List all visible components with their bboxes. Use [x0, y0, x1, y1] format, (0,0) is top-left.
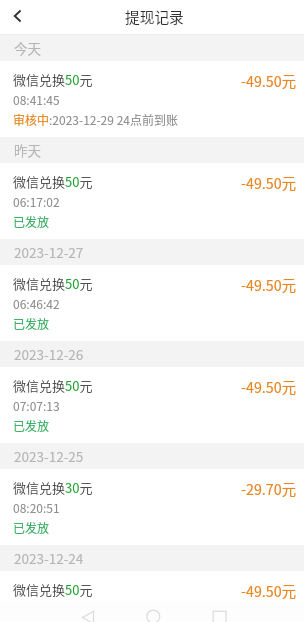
staticText: 微信兑换50元: [13, 274, 93, 293]
button[interactable]: 微信兑换50元: [0, 571, 304, 622]
staticText: -49.50元: [241, 172, 296, 193]
staticText: 已发放: [13, 417, 50, 434]
button[interactable]: 微信兑换50元: [0, 367, 304, 443]
staticText: 已发放: [13, 315, 50, 332]
staticText: 2023-12-27: [14, 242, 84, 262]
staticText: -49.50元: [241, 274, 296, 295]
staticText: 08:41:45: [13, 91, 60, 108]
staticText: -49.50元: [241, 70, 296, 91]
staticText: 2023-12-24: [14, 548, 84, 568]
staticText: 微信兑换50元: [13, 376, 93, 395]
staticText: 已发放: [13, 213, 50, 230]
staticText: 昨天: [14, 140, 41, 160]
button[interactable]: 微信兑换30元: [0, 469, 304, 545]
button[interactable]: 微信兑换50元: [0, 265, 304, 341]
staticText: 微信兑换50元: [13, 70, 93, 89]
staticText: -49.50元: [241, 580, 296, 601]
staticText: 06:46:42: [13, 295, 60, 312]
staticText: 今天: [14, 38, 41, 58]
staticText: 审核中:2023-12-29 24点前到账: [13, 111, 178, 128]
staticText: -49.50元: [241, 376, 296, 397]
button[interactable]: Back: [0, 0, 34, 34]
staticText: 2023-12-25: [14, 446, 84, 466]
staticText: 提现记录: [125, 6, 184, 27]
staticText: -29.70元: [241, 478, 296, 499]
staticText: 微信兑换50元: [13, 172, 93, 191]
button[interactable]: 微信兑换50元: [0, 61, 304, 137]
staticText: 07:07:13: [13, 397, 60, 414]
staticText: 已发放: [13, 519, 50, 536]
staticText: 微信兑换50元: [13, 580, 93, 599]
staticText: 08:20:51: [13, 499, 60, 516]
button[interactable]: 微信兑换50元: [0, 163, 304, 239]
staticText: 06:17:02: [13, 193, 60, 210]
staticText: 2023-12-26: [14, 344, 84, 364]
staticText: 微信兑换30元: [13, 478, 93, 497]
